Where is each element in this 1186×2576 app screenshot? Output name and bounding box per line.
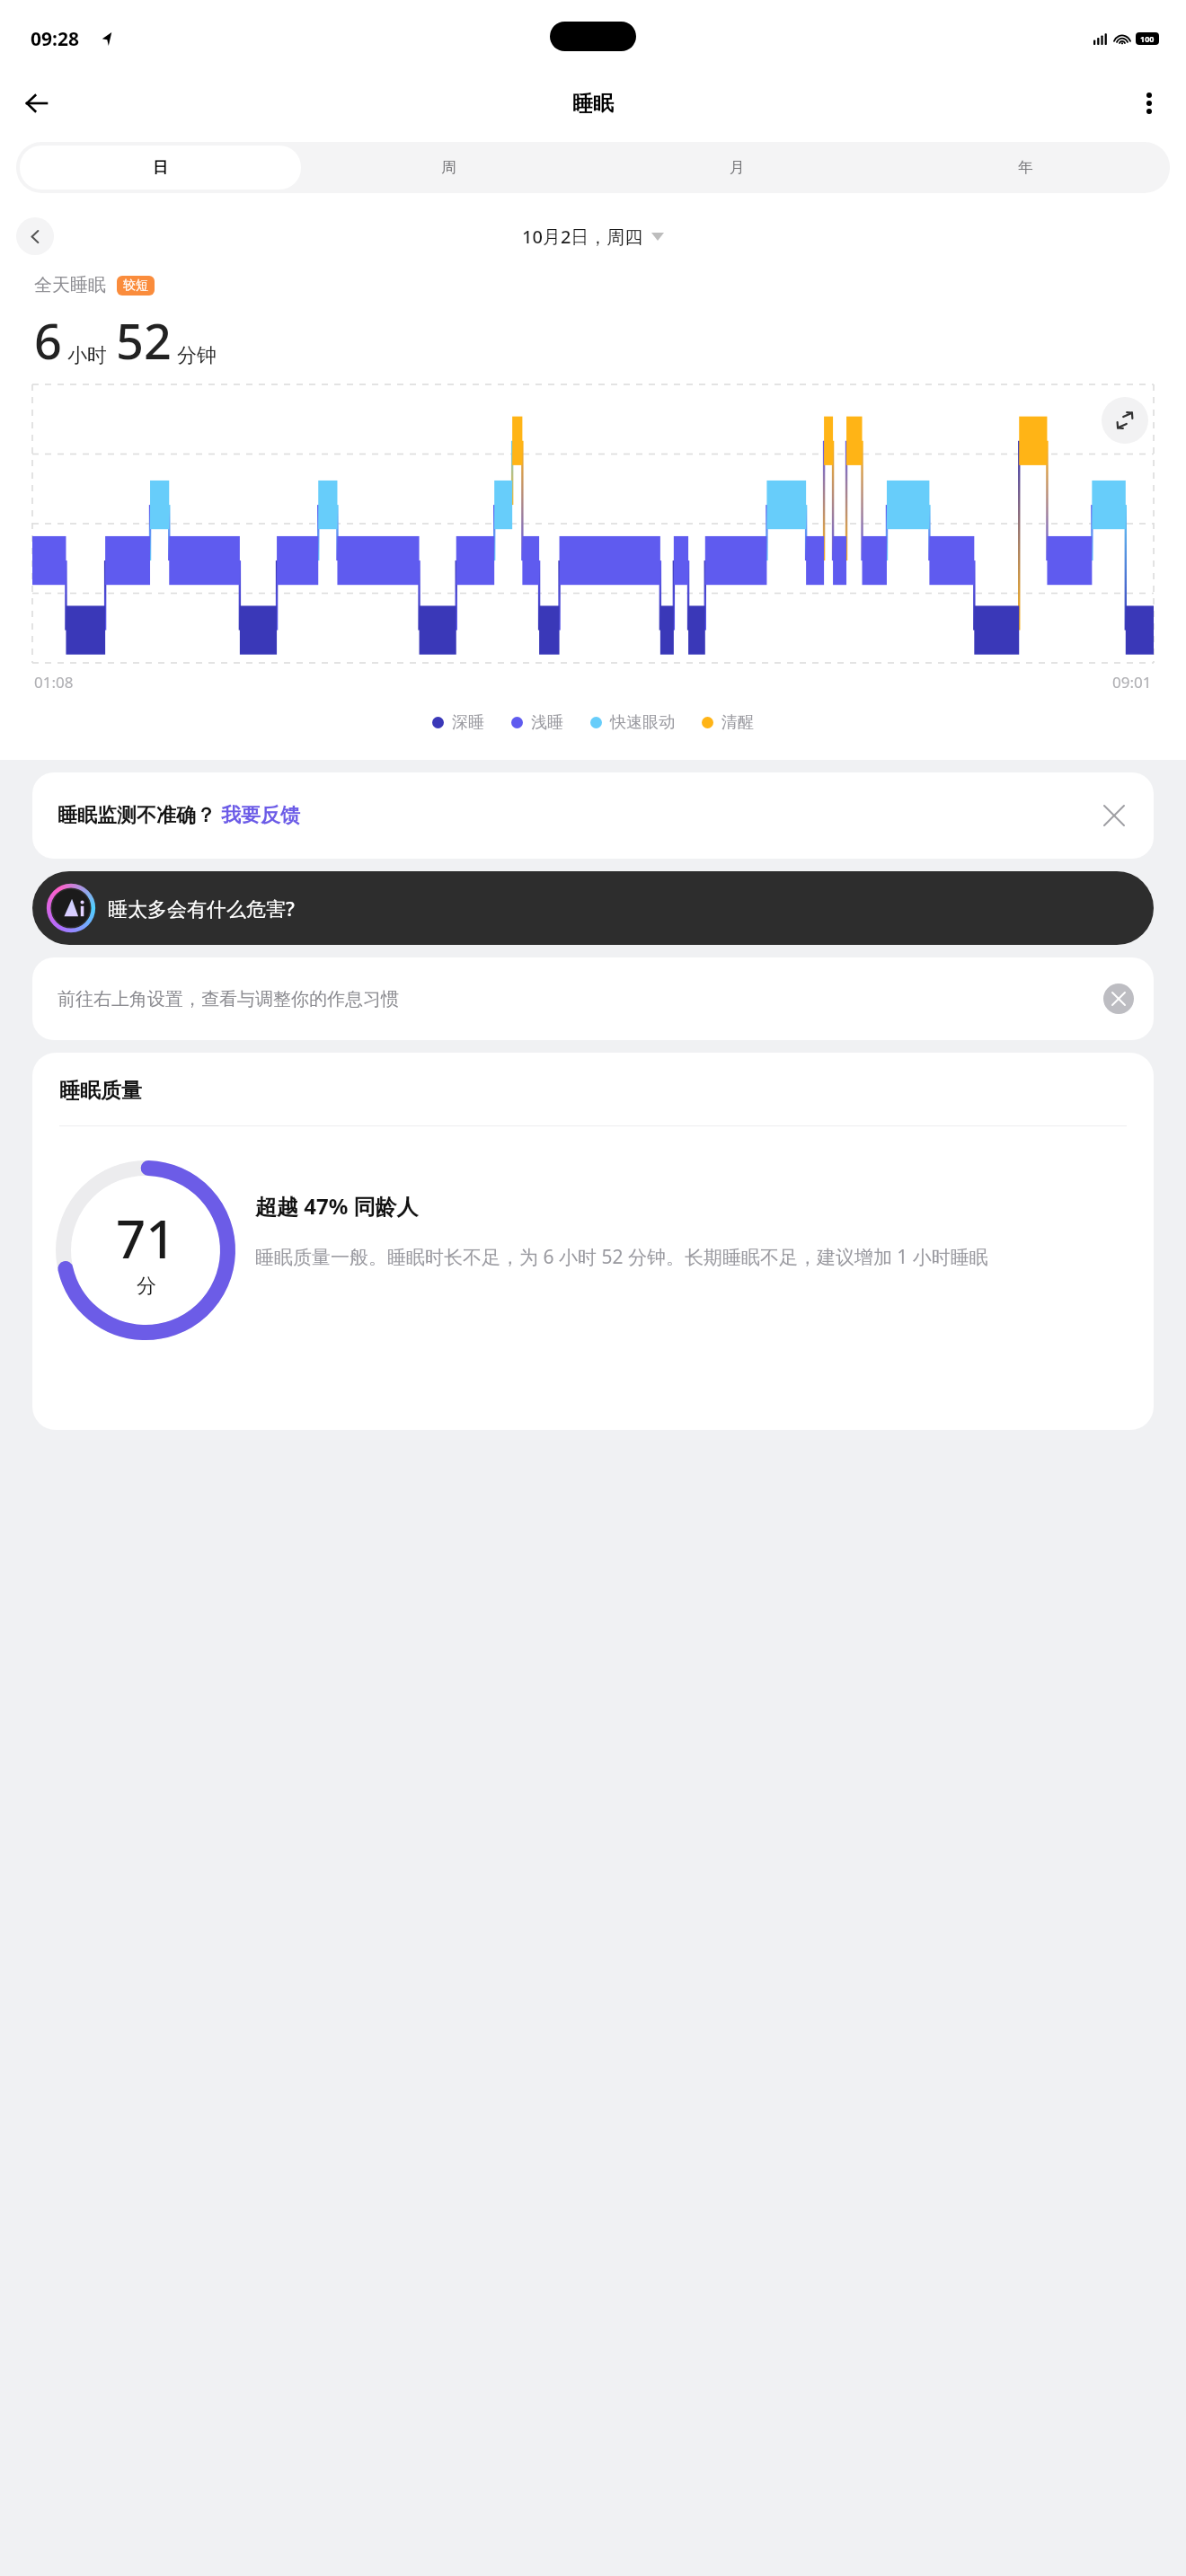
staticText: 浅睡 (531, 712, 563, 733)
staticText: 睡眠质量 (59, 1078, 142, 1104)
staticText: 年 (1018, 158, 1033, 177)
staticText: 分钟 (177, 343, 217, 368)
staticText: 10月2日，周四 (522, 225, 643, 249)
button[interactable]: Dismiss (1094, 796, 1134, 835)
button[interactable]: 睡眠监测不准确？ (32, 772, 1154, 859)
staticText: 分 (137, 1274, 156, 1299)
button[interactable]: 日 (20, 146, 301, 190)
button[interactable]: Back (16, 83, 58, 124)
button[interactable]: 睡太多会有什么危害? (32, 871, 1154, 945)
staticText: 快速眼动 (610, 712, 675, 733)
staticText: 我要反馈 (221, 803, 300, 828)
staticText: 100 (1140, 33, 1155, 44)
button[interactable]: 年 (885, 146, 1166, 190)
staticText: 睡眠监测不准确？ (58, 803, 216, 828)
button[interactable]: Previous day (16, 217, 54, 255)
staticText: 周 (441, 158, 456, 177)
staticText: 月 (730, 158, 745, 177)
button[interactable]: 前往右上角设置，查看与调整你的作息习惯 (32, 957, 1154, 1040)
staticText: 6 (34, 307, 62, 374)
staticText: 较短 (123, 278, 148, 294)
button[interactable]: 月 (597, 146, 878, 190)
staticText: 71 (116, 1203, 176, 1274)
staticText: 超越 47% 同龄人 (255, 1191, 419, 1221)
button[interactable]: 10月2日，周四 (522, 225, 664, 249)
staticText: 日 (153, 158, 168, 177)
staticText: 小时 (67, 343, 107, 368)
button[interactable]: Dismiss hint (1103, 984, 1134, 1014)
staticText: 睡眠质量一般。睡眠时长不足，为 6 小时 52 分钟。长期睡眠不足，建议增加 1… (255, 1244, 988, 1270)
button[interactable]: Expand chart (1102, 397, 1148, 444)
staticText: 全天睡眠 (34, 274, 106, 296)
staticText: 睡太多会有什么危害? (108, 895, 295, 922)
staticText: 52 (116, 307, 172, 374)
staticText: 01:08 (34, 672, 74, 693)
staticText: 睡眠 (572, 91, 614, 117)
button[interactable]: More options (1128, 83, 1170, 124)
staticText: 前往右上角设置，查看与调整你的作息习惯 (58, 988, 399, 1010)
button[interactable]: 周 (308, 146, 589, 190)
button[interactable]: 睡眠质量 (32, 1053, 1154, 1430)
staticText: 深睡 (452, 712, 484, 733)
staticText: 清醒 (721, 712, 754, 733)
staticText: 09:01 (1112, 672, 1152, 693)
staticText: 09:28 (31, 26, 79, 52)
